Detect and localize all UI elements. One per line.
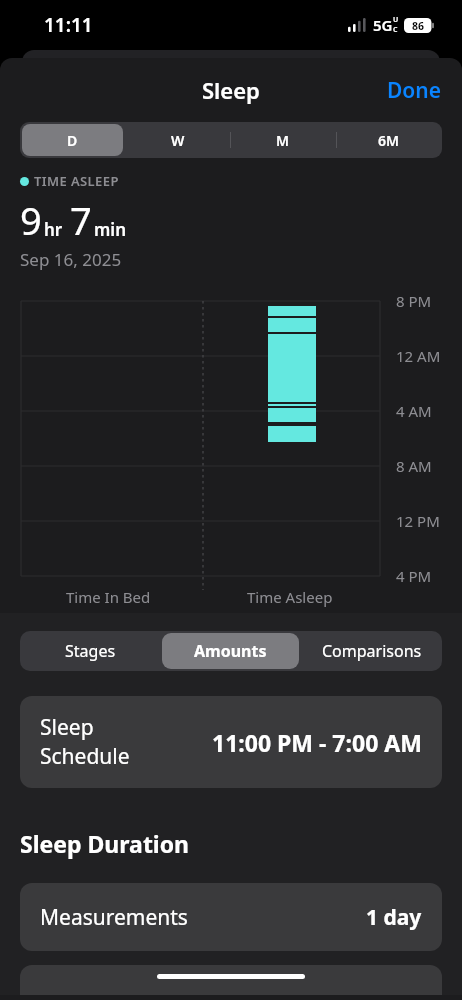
staticText: M <box>276 131 290 150</box>
button[interactable]: Measurements <box>20 883 442 951</box>
staticText: 8 PM <box>396 291 432 311</box>
button[interactable]: 6M <box>336 122 442 158</box>
button[interactable]: Sleep Schedule <box>20 696 442 788</box>
button[interactable]: Amounts <box>160 631 301 671</box>
staticText: 12 PM <box>396 511 440 531</box>
button[interactable]: Done <box>367 72 462 109</box>
staticText: 7 <box>70 194 92 246</box>
staticText: Sleep <box>202 75 260 105</box>
staticText: Sleep Duration <box>20 828 190 859</box>
button[interactable]: W <box>125 122 230 158</box>
staticText: D <box>67 131 78 150</box>
staticText: 4 AM <box>396 401 432 421</box>
staticText: 86 <box>412 19 425 33</box>
staticText: 4 PM <box>396 566 432 586</box>
staticText: Time In Bed <box>66 587 151 607</box>
button[interactable]: Comparisons <box>301 631 442 671</box>
staticText: Measurements <box>40 903 188 932</box>
staticText: min <box>94 218 126 241</box>
staticText: 9 <box>20 194 42 246</box>
button[interactable] <box>20 965 442 995</box>
staticText: 11:11 <box>44 12 93 38</box>
staticText: Done <box>387 76 442 105</box>
staticText: Stages <box>65 640 116 662</box>
staticText: C <box>393 25 398 35</box>
staticText: Sleep Schedule <box>40 713 130 771</box>
staticText: 11:00 PM - 7:00 AM <box>212 727 422 758</box>
staticText: 8 AM <box>396 456 432 476</box>
staticText: Time Asleep <box>247 587 333 607</box>
staticText: 6M <box>378 131 400 150</box>
staticText: W <box>171 131 185 150</box>
staticText: 1 day <box>366 903 422 932</box>
staticText: Sep 16, 2025 <box>20 248 122 271</box>
staticText: TIME ASLEEP <box>34 172 119 190</box>
button[interactable]: Stages <box>20 631 160 671</box>
staticText: U <box>393 15 399 25</box>
staticText: 5G <box>373 15 393 35</box>
button[interactable]: D <box>20 122 125 158</box>
staticText: hr <box>44 218 63 241</box>
staticText: 12 AM <box>396 346 441 366</box>
staticText: Amounts <box>194 640 267 662</box>
staticText: Comparisons <box>322 640 422 662</box>
button[interactable]: M <box>230 122 336 158</box>
